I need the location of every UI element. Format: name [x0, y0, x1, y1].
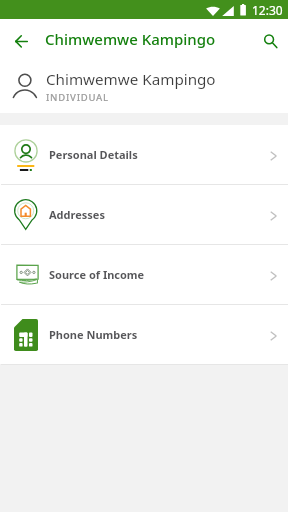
staticText: Phone Numbers	[49, 327, 138, 342]
button[interactable]: Addresses	[0, 185, 288, 244]
staticText: Chimwemwe Kampingo	[45, 29, 216, 49]
button[interactable]: Phone Numbers	[0, 305, 288, 364]
staticText: Addresses	[49, 207, 105, 222]
staticText: Source of Income	[49, 267, 145, 282]
staticText: Chimwemwe Kampingo	[46, 69, 216, 90]
staticText: INDIVIDUAL	[46, 91, 109, 104]
button[interactable]: Search	[258, 27, 284, 53]
staticText: Personal Details	[49, 147, 138, 162]
staticText: 12:30	[252, 2, 283, 18]
button[interactable]: Back	[8, 27, 34, 53]
button[interactable]: Source of Income	[0, 245, 288, 304]
button[interactable]: Personal Details	[0, 125, 288, 184]
